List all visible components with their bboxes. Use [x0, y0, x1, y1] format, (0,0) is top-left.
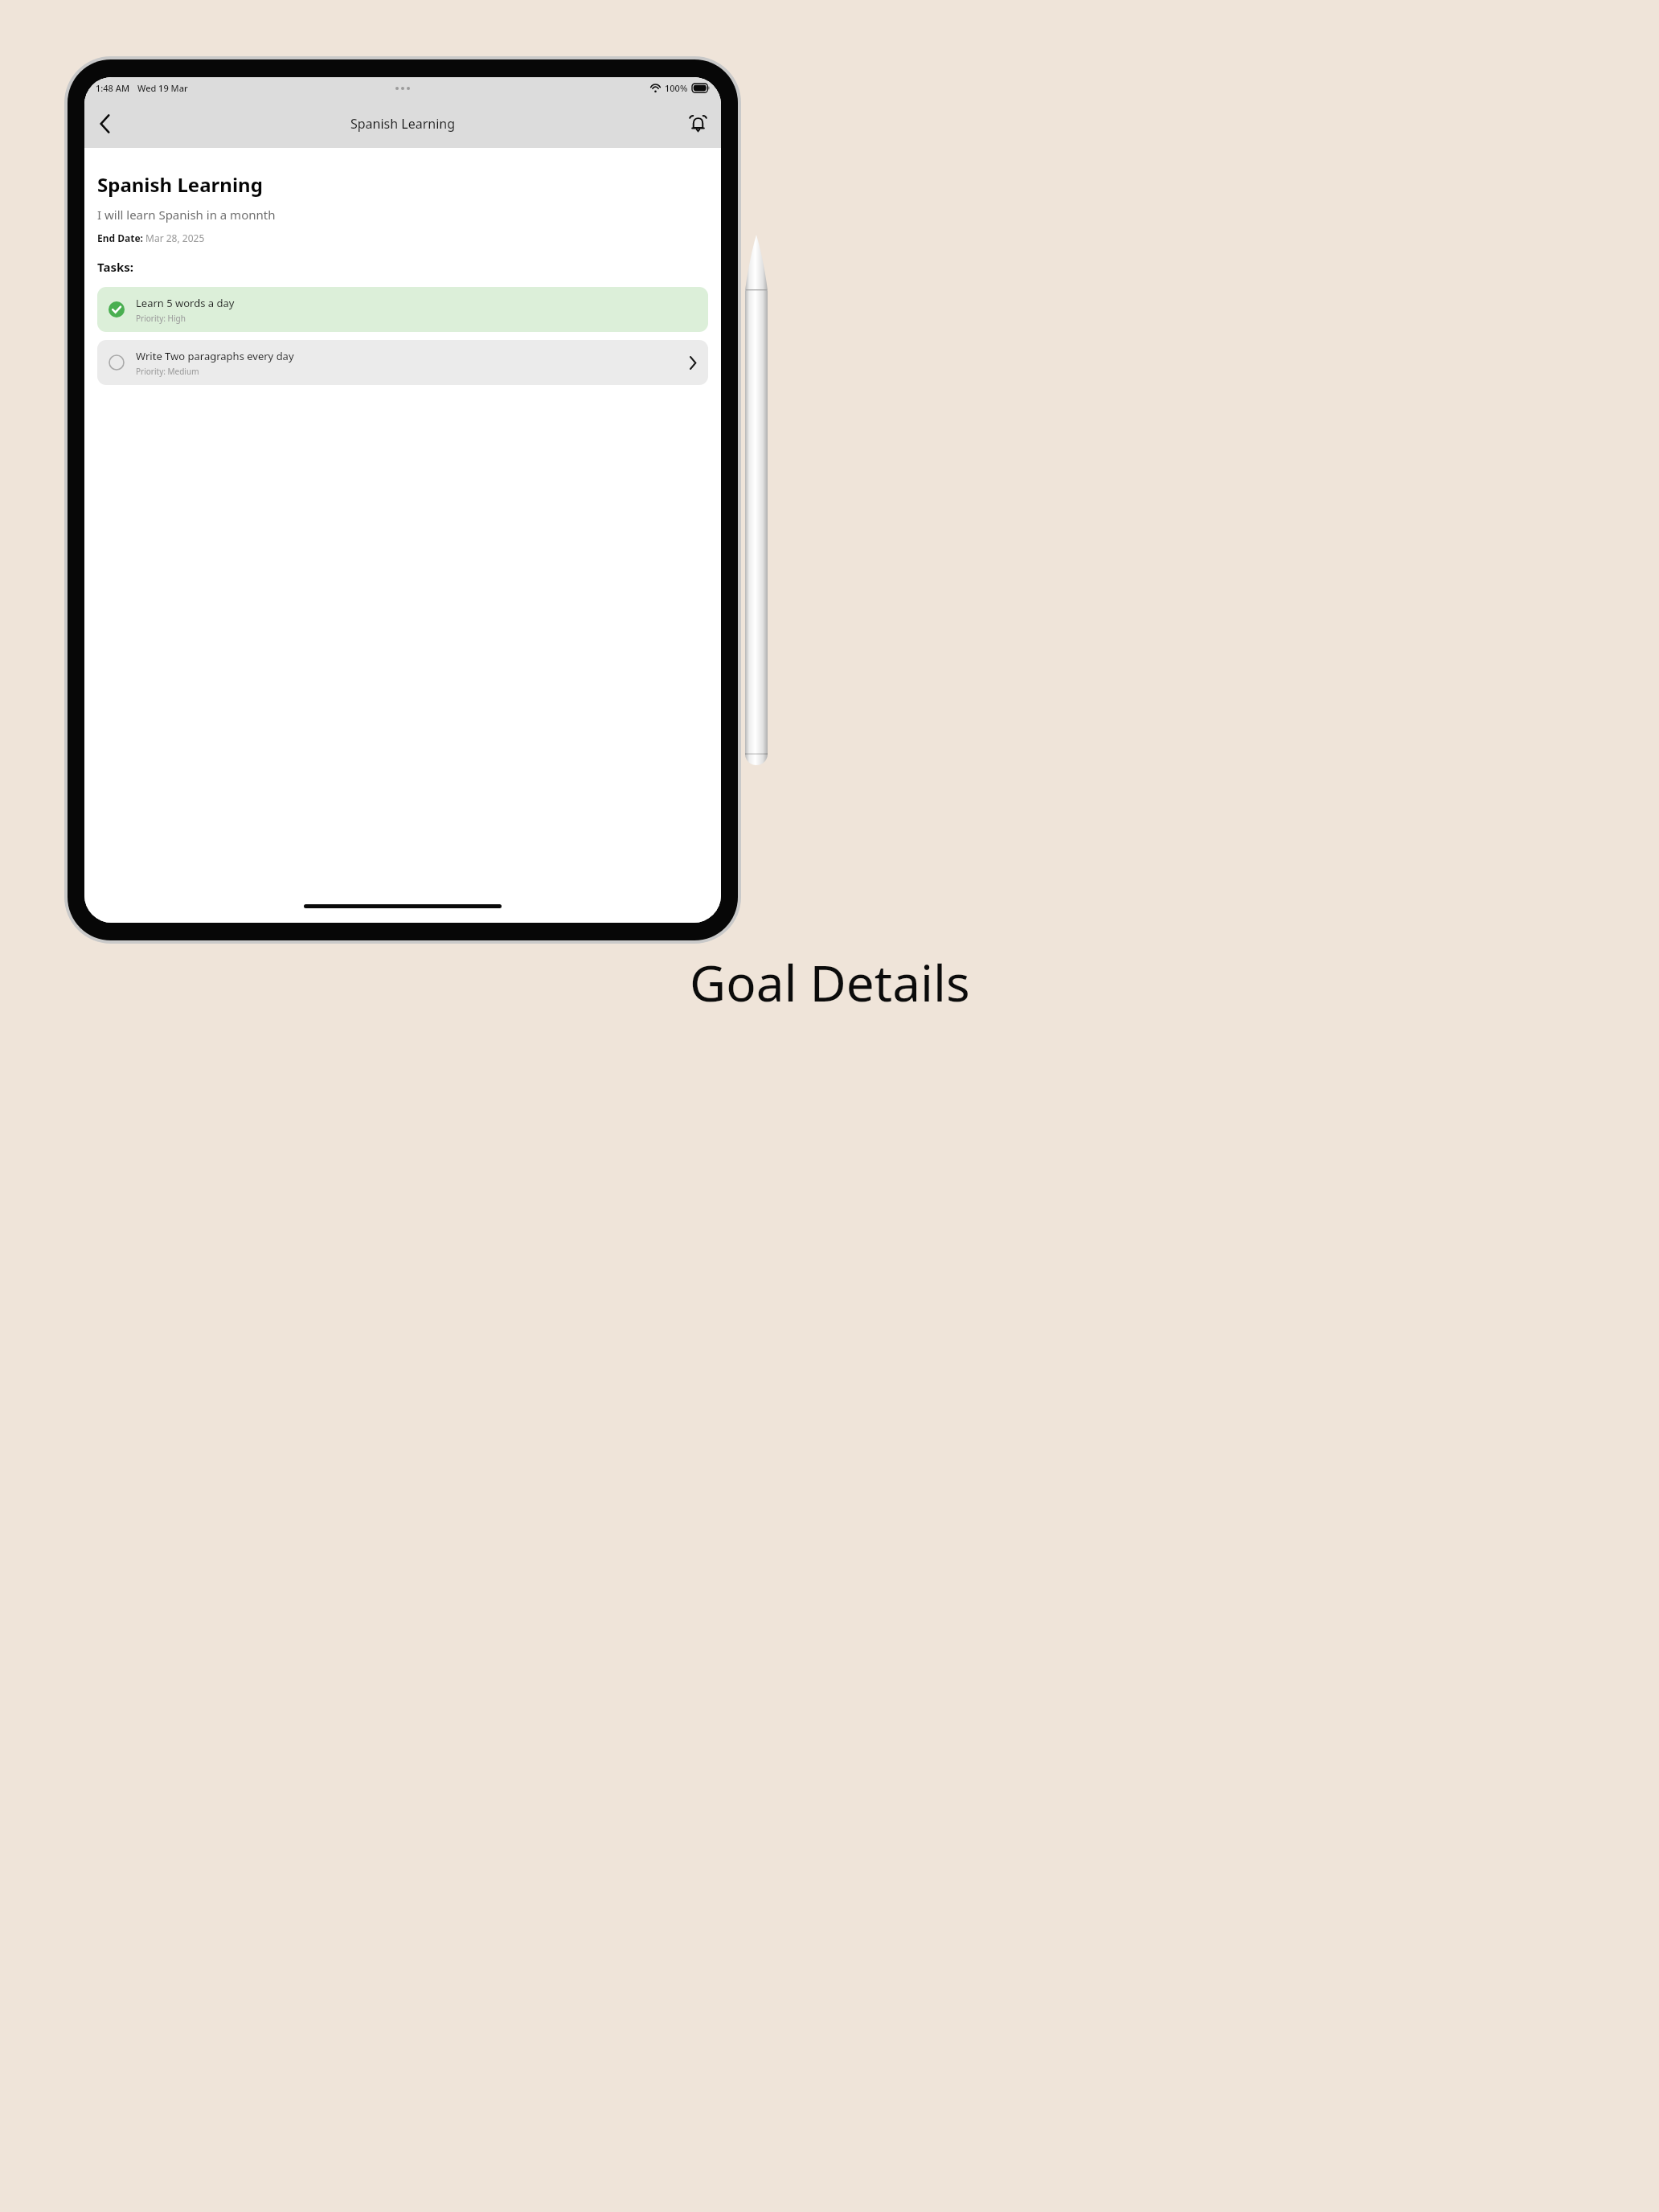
staticText: Wed 19 Mar [137, 82, 188, 94]
staticText: Spanish Learning [97, 171, 263, 198]
button[interactable]: Notifications [682, 109, 713, 139]
staticText: Priority: High [136, 313, 186, 324]
staticText: Write Two paragraphs every day [136, 349, 294, 363]
staticText: Priority: Medium [136, 366, 199, 377]
staticText: Goal Details [690, 948, 970, 1016]
staticText: 1:48 AM [96, 82, 130, 94]
staticText: I will learn Spanish in a monnth [97, 207, 276, 223]
staticText: Learn 5 words a day [136, 296, 235, 310]
staticText: Tasks: [97, 259, 134, 275]
staticText: End Date: Mar 28, 2025 [97, 231, 205, 244]
button[interactable]: Write Two paragraphs every day [97, 340, 708, 385]
staticText: Spanish Learning [350, 115, 456, 133]
button[interactable]: Learn 5 words a day [97, 287, 708, 332]
staticText: 100% [665, 82, 688, 94]
button[interactable]: Back [89, 109, 120, 139]
